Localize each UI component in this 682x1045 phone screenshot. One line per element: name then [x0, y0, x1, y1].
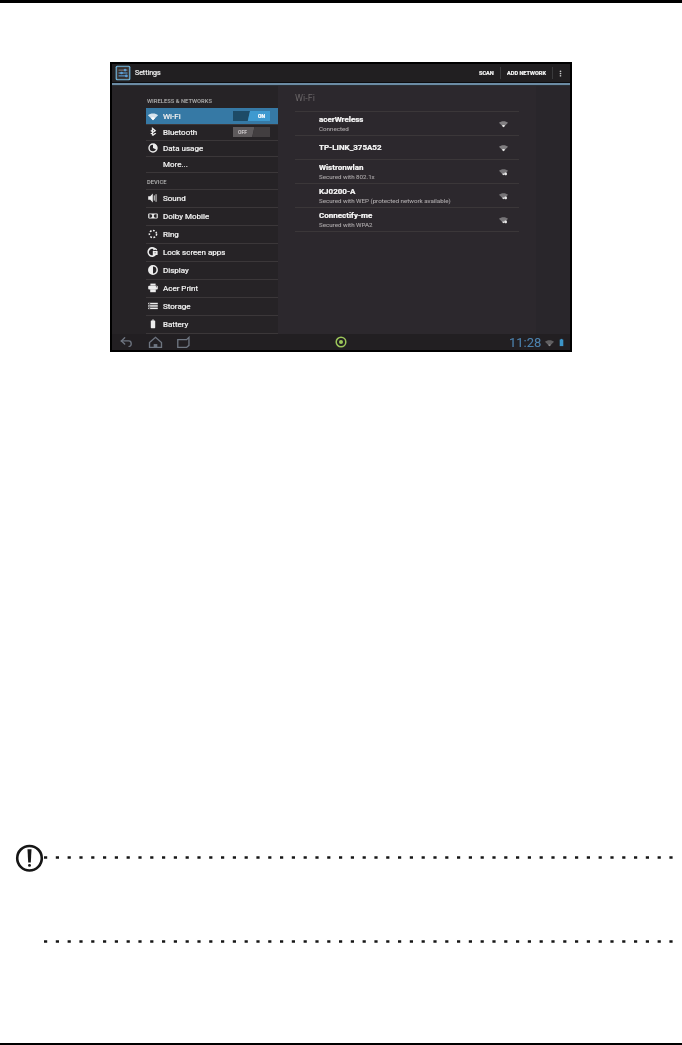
- button[interactable]: Storage: [146, 297, 278, 315]
- staticText: Connected: [319, 125, 349, 132]
- staticText: Lock screen apps: [163, 248, 226, 257]
- button[interactable]: ADD NETWORK: [501, 64, 552, 82]
- staticText: Display: [163, 266, 189, 275]
- staticText: TP-LINK_375A52: [319, 143, 382, 152]
- button[interactable]: TP-LINK_375A52: [278, 135, 536, 159]
- button[interactable]: KJ0200-A: [278, 183, 536, 207]
- staticText: Wi-Fi: [163, 112, 181, 121]
- staticText: KJ0200-A: [319, 187, 356, 196]
- staticText: acerWreless: [319, 115, 364, 124]
- button[interactable]: Wistronwlan: [278, 159, 536, 183]
- staticText: Data usage: [163, 144, 204, 153]
- button[interactable]: Home: [149, 336, 162, 349]
- button[interactable]: Back: [120, 336, 133, 349]
- staticText: Secured with WPA2: [319, 221, 373, 228]
- button[interactable]: Wi-Fi: [146, 108, 278, 124]
- button[interactable]: Dolby Mobile: [146, 207, 278, 225]
- staticText: Dolby Mobile: [163, 212, 210, 221]
- button[interactable]: Ring: [146, 225, 278, 243]
- button[interactable]: Screenshot: [335, 336, 347, 348]
- staticText: Wi-Fi: [295, 93, 315, 104]
- staticText: Wistronwlan: [319, 163, 364, 172]
- staticText: DEVICE: [147, 179, 167, 186]
- staticText: Sound: [163, 194, 186, 203]
- button[interactable]: Lock screen apps: [146, 243, 278, 261]
- staticText: ADD NETWORK: [507, 70, 546, 77]
- button[interactable]: Recent apps: [177, 336, 190, 349]
- staticText: Battery: [163, 320, 189, 329]
- button[interactable]: Settings app: [115, 65, 131, 81]
- button[interactable]: SCAN: [473, 64, 500, 82]
- staticText: Bluetooth: [163, 128, 198, 137]
- staticText: More...: [163, 160, 188, 169]
- staticText: Settings: [135, 69, 161, 77]
- button[interactable]: Data usage: [146, 140, 278, 156]
- button[interactable]: Battery: [146, 315, 278, 333]
- staticText: 11:28: [509, 335, 542, 350]
- button[interactable]: acerWreless: [278, 111, 536, 135]
- staticText: Secured with WEP (protected network avai…: [319, 197, 451, 204]
- button[interactable]: Bluetooth: [146, 124, 278, 140]
- staticText: SCAN: [479, 70, 494, 77]
- button[interactable]: More...: [146, 156, 278, 172]
- button[interactable]: Acer Print: [146, 279, 278, 297]
- button[interactable]: Sound: [146, 189, 278, 207]
- staticText: Secured with 802.1x: [319, 173, 375, 180]
- staticText: ON: [258, 113, 265, 119]
- staticText: Ring: [163, 230, 179, 239]
- staticText: WIRELESS & NETWORKS: [147, 98, 213, 105]
- staticText: Acer Print: [163, 284, 199, 293]
- button[interactable]: Connectify-me: [278, 207, 536, 231]
- staticText: Storage: [163, 302, 191, 311]
- button[interactable]: More options: [553, 64, 567, 82]
- button[interactable]: Display: [146, 261, 278, 279]
- staticText: Connectify-me: [319, 211, 373, 220]
- staticText: OFF: [238, 129, 247, 135]
